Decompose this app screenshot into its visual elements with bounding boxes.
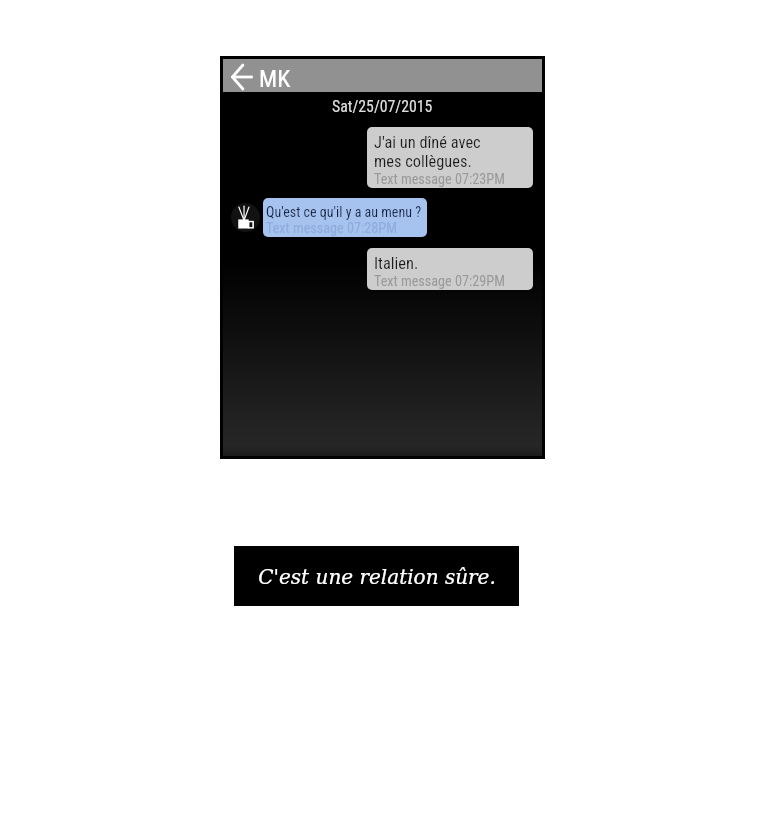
button[interactable]: Back: [232, 65, 253, 89]
button[interactable]: C'est une relation sûre.: [234, 546, 519, 606]
staticText: Text message 07:29PM: [374, 273, 505, 290]
staticText: Qu'est ce qu'il y a au menu ?: [266, 204, 422, 220]
staticText: Italien.: [374, 254, 419, 273]
button[interactable]: Back: [223, 59, 542, 92]
staticText: C'est une relation sûre.: [258, 565, 496, 588]
staticText: Text message 07:23PM: [374, 171, 505, 188]
staticText: mes collègues.: [374, 152, 472, 171]
button[interactable]: Italien.: [367, 248, 533, 290]
staticText: Sat/25/07/2015: [332, 97, 433, 116]
button[interactable]: Contact avatar: [231, 203, 260, 232]
staticText: Text message 07:28PM: [266, 220, 397, 237]
button[interactable]: Qu'est ce qu'il y a au menu ?: [263, 198, 427, 237]
button[interactable]: J'ai un dîné avec: [367, 127, 533, 188]
staticText: MK: [259, 65, 291, 93]
staticText: J'ai un dîné avec: [374, 133, 481, 152]
